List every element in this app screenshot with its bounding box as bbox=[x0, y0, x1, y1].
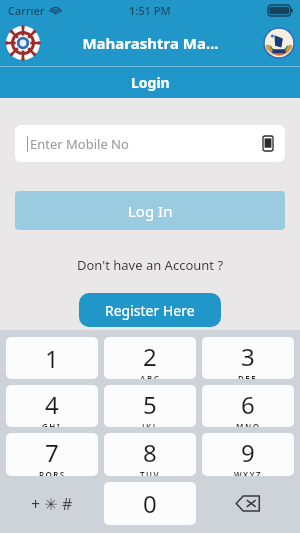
button[interactable]: 3 bbox=[202, 337, 294, 379]
staticText: Don't have an Account ? bbox=[77, 256, 224, 274]
button[interactable]: plus star hash bbox=[3, 479, 101, 528]
button[interactable]: 0 bbox=[104, 482, 196, 525]
staticText: 0 bbox=[143, 487, 157, 520]
button[interactable]: Log In bbox=[15, 191, 285, 230]
button[interactable]: 4 bbox=[6, 385, 98, 427]
staticText: JKL bbox=[142, 421, 159, 427]
staticText: 4 bbox=[45, 388, 59, 421]
button[interactable]: 7 bbox=[6, 433, 98, 476]
button[interactable]: Maharashtra Maritime Board logo bbox=[6, 26, 40, 60]
button[interactable]: 6 bbox=[202, 385, 294, 427]
staticText: 1:51 PM bbox=[129, 3, 171, 18]
staticText: Maharashtra Ma... bbox=[82, 33, 219, 53]
staticText: Log In bbox=[128, 201, 173, 221]
staticText: 7 bbox=[45, 436, 59, 469]
staticText: 3 bbox=[241, 340, 255, 373]
staticText: 1 bbox=[45, 342, 59, 375]
staticText: + ✳ # bbox=[31, 493, 73, 515]
staticText: Register Here bbox=[105, 301, 195, 320]
staticText: 8 bbox=[143, 436, 157, 469]
button[interactable]: Enter Mobile No bbox=[15, 125, 285, 162]
staticText: GHI bbox=[42, 421, 62, 427]
staticText: Carrier bbox=[8, 3, 45, 18]
staticText: MNO bbox=[236, 421, 261, 427]
staticText: 9 bbox=[241, 436, 255, 469]
staticText: 6 bbox=[241, 388, 255, 421]
staticText: TUV bbox=[140, 469, 161, 476]
staticText: 5 bbox=[143, 388, 157, 421]
staticText: Login bbox=[131, 73, 170, 92]
button[interactable]: Login bbox=[0, 67, 300, 98]
staticText: Enter Mobile No bbox=[30, 135, 129, 153]
staticText: WXYZ bbox=[234, 469, 263, 476]
button[interactable]: Backspace bbox=[199, 479, 297, 528]
button[interactable]: 5 bbox=[104, 385, 196, 427]
staticText: PQRS bbox=[39, 469, 66, 476]
button[interactable]: 8 bbox=[104, 433, 196, 476]
staticText: ABC bbox=[140, 373, 161, 379]
button[interactable]: 9 bbox=[202, 433, 294, 476]
button[interactable]: MRSAC logo bbox=[264, 28, 294, 58]
button[interactable]: 2 bbox=[104, 337, 196, 379]
button[interactable]: 1 bbox=[6, 337, 98, 379]
button[interactable]: Register Here bbox=[79, 293, 221, 327]
staticText: 2 bbox=[143, 340, 157, 373]
staticText: DEF bbox=[238, 373, 258, 379]
